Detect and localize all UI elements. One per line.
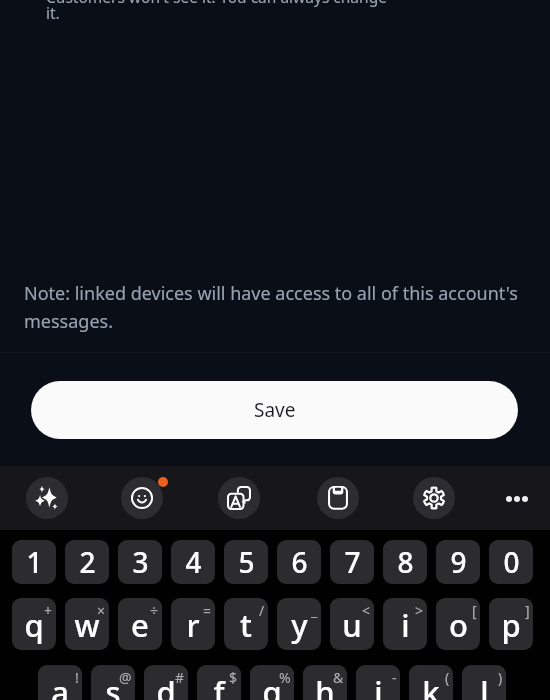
staticText: + (44, 601, 53, 620)
button[interactable]: d (144, 665, 188, 700)
staticText: × (97, 601, 106, 620)
staticText: Customers won't see it. You can always c… (46, 0, 398, 23)
staticText: 7 (344, 543, 361, 581)
button[interactable]: 5 (224, 540, 268, 584)
staticText: < (362, 601, 371, 620)
button[interactable]: Magic compose (26, 477, 68, 519)
staticText: $ (229, 668, 238, 687)
button[interactable]: Translate (218, 477, 260, 519)
staticText: k (422, 671, 440, 700)
staticText: 3 (132, 543, 149, 581)
button[interactable]: Settings (413, 477, 455, 519)
button[interactable]: 8 (383, 540, 427, 584)
staticText: j (374, 671, 383, 700)
staticText: 5 (238, 543, 255, 581)
button[interactable]: w (65, 598, 109, 650)
button[interactable]: q (12, 598, 56, 650)
staticText: 9 (450, 543, 467, 581)
staticText: y (291, 604, 308, 646)
staticText: 4 (185, 543, 202, 581)
staticText: & (333, 668, 344, 687)
staticText: Note: linked devices will have access to… (24, 281, 529, 333)
button[interactable]: r (171, 598, 215, 650)
staticText: g (262, 671, 282, 700)
staticText: - (392, 668, 397, 687)
button[interactable]: y (277, 598, 321, 650)
staticText: e (131, 604, 149, 646)
button[interactable]: e (118, 598, 162, 650)
button[interactable]: g (250, 665, 294, 700)
button[interactable]: Clipboard (317, 477, 359, 519)
staticText: l (480, 671, 489, 700)
staticText: @ (119, 668, 132, 687)
button[interactable]: o (436, 598, 480, 650)
staticText: [ (472, 601, 477, 620)
button[interactable]: t (224, 598, 268, 650)
staticText: ÷ (150, 601, 159, 620)
button[interactable]: 1 (12, 540, 56, 584)
staticText: ] (525, 601, 530, 620)
button[interactable]: j (356, 665, 400, 700)
staticText: w (74, 604, 100, 646)
staticText: r (186, 604, 200, 646)
staticText: p (501, 604, 521, 646)
staticText: q (24, 604, 44, 646)
button[interactable]: s (91, 665, 135, 700)
staticText: 8 (397, 543, 414, 581)
button[interactable]: 2 (65, 540, 109, 584)
staticText: 1 (26, 543, 43, 581)
staticText: t (240, 604, 252, 646)
staticText: o (449, 604, 468, 646)
staticText: a (51, 671, 69, 700)
button[interactable]: 6 (277, 540, 321, 584)
staticText: i (401, 604, 410, 646)
button[interactable]: f (197, 665, 241, 700)
button[interactable]: More options (495, 477, 537, 519)
button[interactable]: 4 (171, 540, 215, 584)
staticText: 0 (503, 543, 520, 581)
staticText: f (213, 671, 225, 700)
button[interactable]: 7 (330, 540, 374, 584)
button[interactable]: 3 (118, 540, 162, 584)
button[interactable]: 9 (436, 540, 480, 584)
staticText: d (156, 671, 176, 700)
staticText: s (105, 671, 121, 700)
staticText: Save (254, 397, 296, 423)
button[interactable]: Emoji (121, 477, 163, 519)
button[interactable]: l (462, 665, 506, 700)
button[interactable]: i (383, 598, 427, 650)
button[interactable]: k (409, 665, 453, 700)
button[interactable]: a (38, 665, 82, 700)
button[interactable]: 0 (489, 540, 533, 584)
staticText: u (342, 604, 362, 646)
button[interactable]: h (303, 665, 347, 700)
staticText: 6 (291, 543, 308, 581)
button[interactable]: u (330, 598, 374, 650)
staticText: / (259, 601, 265, 620)
staticText: ) (498, 668, 503, 687)
staticText: = (203, 601, 212, 620)
staticText: # (175, 668, 185, 687)
staticText: ! (75, 668, 79, 687)
staticText: h (315, 671, 335, 700)
button[interactable]: Save (31, 381, 518, 439)
staticText: 2 (79, 543, 96, 581)
button[interactable]: p (489, 598, 533, 650)
staticText: > (415, 601, 424, 620)
staticText: _ (311, 601, 318, 620)
staticText: % (279, 668, 291, 687)
staticText: ( (445, 668, 450, 687)
